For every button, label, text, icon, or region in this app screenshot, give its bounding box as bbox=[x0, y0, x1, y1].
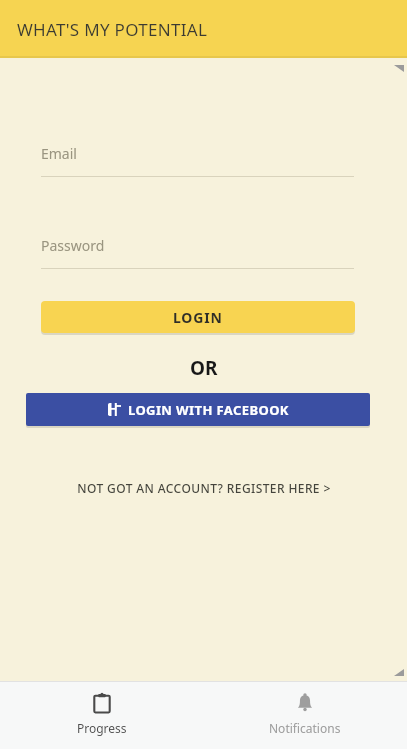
other: Notifications bbox=[294, 692, 316, 714]
button[interactable]: LOGIN bbox=[41, 301, 355, 333]
button[interactable]: LOGIN WITH FACEBOOK bbox=[26, 393, 370, 426]
button[interactable]: Notifications bbox=[203, 681, 407, 749]
button[interactable]: Password bbox=[41, 236, 354, 269]
staticText: NOT GOT AN ACCOUNT? REGISTER HERE > bbox=[77, 480, 331, 496]
button[interactable]: Progress bbox=[0, 681, 203, 749]
staticText: LOGIN bbox=[173, 308, 223, 327]
staticText: WHAT'S MY POTENTIAL bbox=[17, 18, 208, 41]
staticText: LOGIN WITH FACEBOOK bbox=[128, 401, 289, 419]
staticText: Email bbox=[41, 144, 77, 163]
button[interactable]: Email bbox=[41, 144, 354, 177]
staticText: Password bbox=[41, 236, 105, 255]
button[interactable]: NOT GOT AN ACCOUNT? REGISTER HERE > bbox=[0, 480, 407, 496]
staticText: Progress bbox=[77, 720, 127, 736]
staticText: OR bbox=[190, 355, 218, 381]
other: Progress bbox=[91, 692, 113, 714]
staticText: Notifications bbox=[269, 720, 341, 736]
